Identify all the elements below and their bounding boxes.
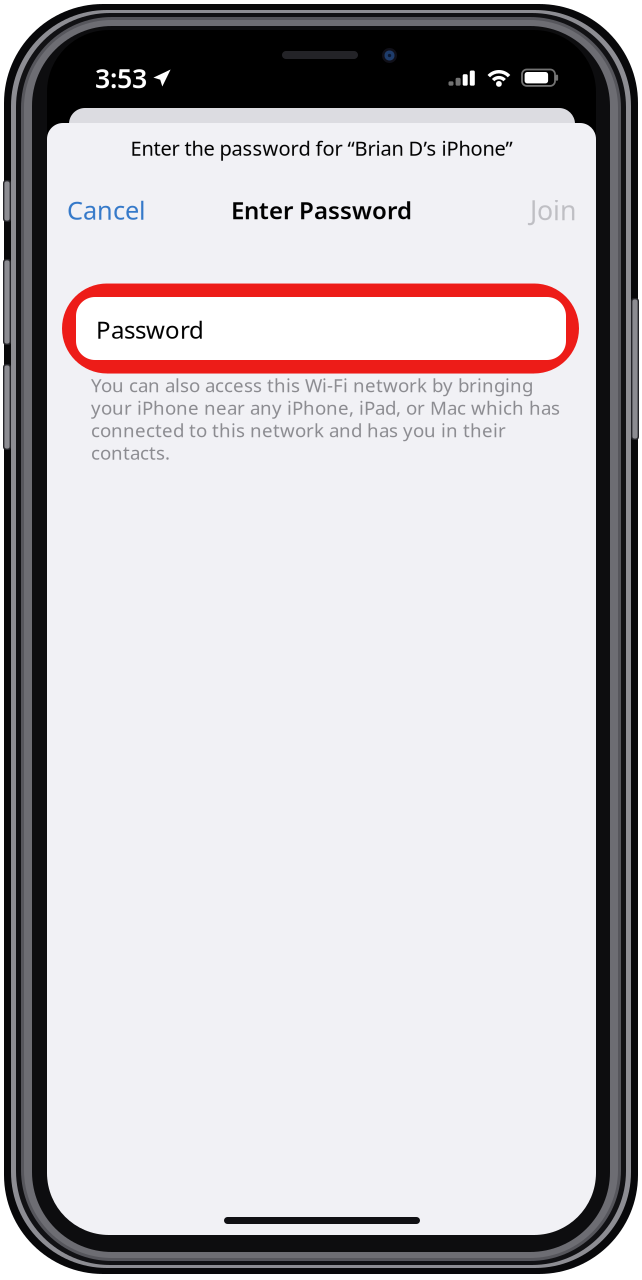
staticText: You can also access this Wi-Fi network b… — [91, 373, 533, 397]
staticText: Join — [530, 192, 576, 228]
staticText: Password — [96, 314, 204, 345]
staticText: connected to this network and has you in… — [91, 418, 506, 442]
button[interactable]: Cancel — [67, 185, 171, 235]
staticText: contacts. — [91, 440, 170, 465]
staticText: Cancel — [67, 193, 146, 227]
staticText: your iPhone near any iPhone, iPad, or Ma… — [91, 395, 560, 420]
staticText: 3:53 — [95, 60, 147, 96]
button[interactable]: Password — [62, 283, 579, 373]
button[interactable]: Join — [486, 185, 576, 235]
staticText: Enter Password — [231, 194, 412, 226]
staticText: Enter the password for “Brian D’s iPhone… — [130, 135, 512, 161]
